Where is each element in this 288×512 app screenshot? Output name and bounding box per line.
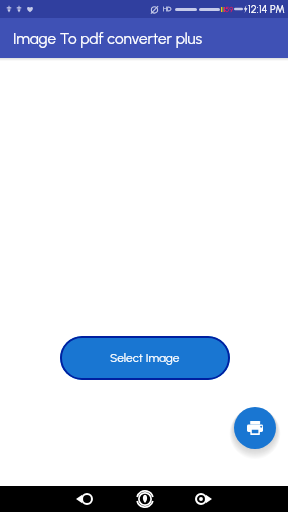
staticText: 12:14 PM [248,3,285,16]
button[interactable]: Home [132,487,158,511]
button[interactable]: Print [234,407,276,449]
button[interactable]: Back [71,489,97,509]
staticText: Select Image [110,351,180,365]
staticText: Image To pdf converter plus [13,29,203,47]
staticText: HD [163,5,172,13]
staticText: 59 [225,5,234,14]
button[interactable]: Recent apps [190,489,216,509]
button[interactable]: Select Image [60,336,230,380]
